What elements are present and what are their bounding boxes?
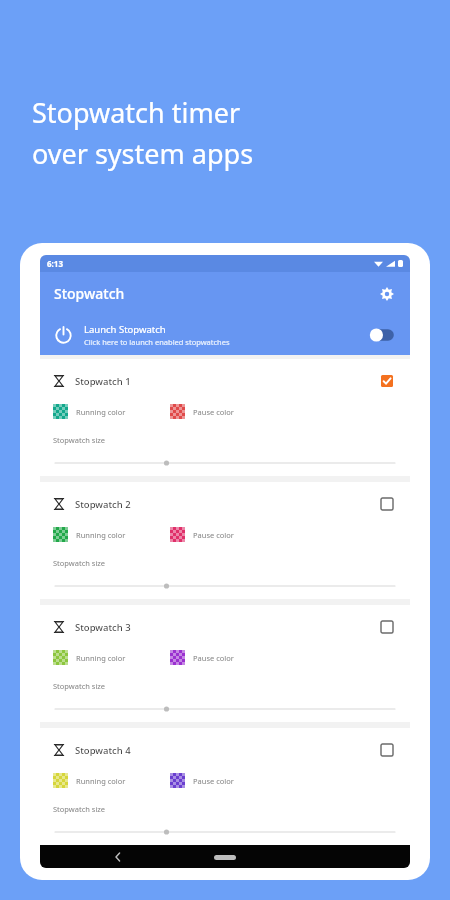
staticText: Stopwatch size [53, 804, 106, 814]
staticText: Running color [76, 653, 126, 663]
staticText: Stopwatch 2 [75, 498, 131, 511]
staticText: Stopwatch size [53, 435, 106, 445]
button[interactable]: Stopwatch 2 [40, 482, 410, 599]
button[interactable]: Stopwatch 3 [40, 605, 410, 722]
button[interactable]: Running color [53, 650, 68, 665]
button[interactable]: Enable Stopwatch 3 [377, 617, 397, 637]
staticText: Pause color [193, 776, 234, 786]
button[interactable]: Stopwatch 1 [40, 359, 410, 476]
button[interactable]: Pause color [170, 650, 185, 665]
button[interactable]: Settings [374, 281, 400, 307]
button[interactable]: Stopwatch size slider [53, 580, 397, 592]
staticText: Stopwatch size [53, 681, 106, 691]
button[interactable]: Stopwatch size slider [53, 457, 397, 469]
button[interactable]: Toggle launch stopwatch [368, 324, 398, 346]
button[interactable]: Stopwatch 4 [40, 728, 410, 845]
staticText: Stopwatch 3 [75, 621, 131, 634]
staticText: Stopwatch [54, 284, 125, 303]
button[interactable]: Pause color [170, 773, 185, 788]
button[interactable]: Running color [53, 527, 68, 542]
button[interactable]: Stopwatch size slider [53, 826, 397, 838]
button[interactable]: Stopwatch size slider [53, 703, 397, 715]
staticText: Stopwatch 1 [75, 375, 131, 388]
button[interactable]: Running color [53, 773, 68, 788]
staticText: Launch Stopwatch [84, 323, 166, 336]
staticText: Running color [76, 530, 126, 540]
button[interactable]: Launch Stopwatch [40, 315, 410, 355]
staticText: Stopwatch size [53, 558, 106, 568]
staticText: 6:13 [47, 258, 63, 269]
button[interactable]: Running color [53, 404, 68, 419]
button[interactable]: Pause color [170, 527, 185, 542]
staticText: over system apps [32, 135, 254, 172]
button[interactable]: Home [210, 849, 240, 865]
staticText: Running color [76, 776, 126, 786]
staticText: Running color [76, 407, 126, 417]
staticText: Pause color [193, 530, 234, 540]
button[interactable]: Enable Stopwatch 4 [377, 740, 397, 760]
staticText: Pause color [193, 407, 234, 417]
button[interactable]: Enable Stopwatch 1 [377, 371, 397, 391]
staticText: Stopwatch timer [32, 94, 241, 131]
button[interactable]: Enable Stopwatch 2 [377, 494, 397, 514]
staticText: Stopwatch 4 [75, 744, 131, 757]
staticText: Pause color [193, 653, 234, 663]
button[interactable]: Pause color [170, 404, 185, 419]
button[interactable]: Back [108, 847, 128, 867]
staticText: Click here to launch enabled stopwatches [84, 337, 230, 347]
